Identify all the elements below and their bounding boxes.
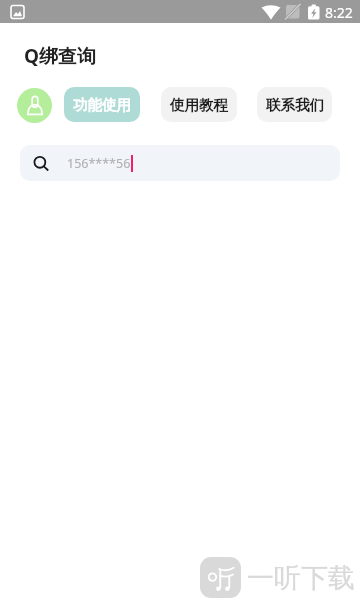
staticText: 联系我们	[266, 96, 324, 114]
button[interactable]: 使用教程	[161, 87, 237, 122]
staticText: Q绑查询	[24, 43, 97, 69]
staticText: 156****56	[67, 155, 131, 172]
button[interactable]: 功能使用	[64, 87, 140, 122]
staticText: 8:22	[325, 3, 353, 22]
button[interactable]: 156****56	[20, 145, 340, 181]
staticText: 一听下载	[247, 561, 355, 595]
button[interactable]: 联系我们	[257, 87, 332, 122]
staticText: 功能使用	[73, 96, 131, 114]
button[interactable]: Profile	[17, 88, 52, 123]
staticText: 使用教程	[170, 96, 228, 114]
